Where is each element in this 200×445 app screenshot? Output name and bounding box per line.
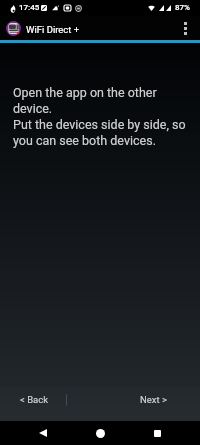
button[interactable]: Back <box>27 421 59 445</box>
staticText: < Back <box>20 394 49 405</box>
button[interactable]: More options <box>178 16 192 40</box>
button[interactable]: Next > <box>106 386 200 421</box>
button[interactable]: Recents <box>141 421 173 445</box>
staticText: 87% <box>175 3 190 12</box>
button[interactable]: < Back <box>0 386 69 421</box>
staticText: 17:45 <box>19 3 40 12</box>
staticText: WiFi Direct + <box>26 24 80 35</box>
staticText: Next > <box>140 394 167 405</box>
staticText: Open the app on the other device. Put th… <box>13 85 186 148</box>
button[interactable]: Home <box>84 421 116 445</box>
